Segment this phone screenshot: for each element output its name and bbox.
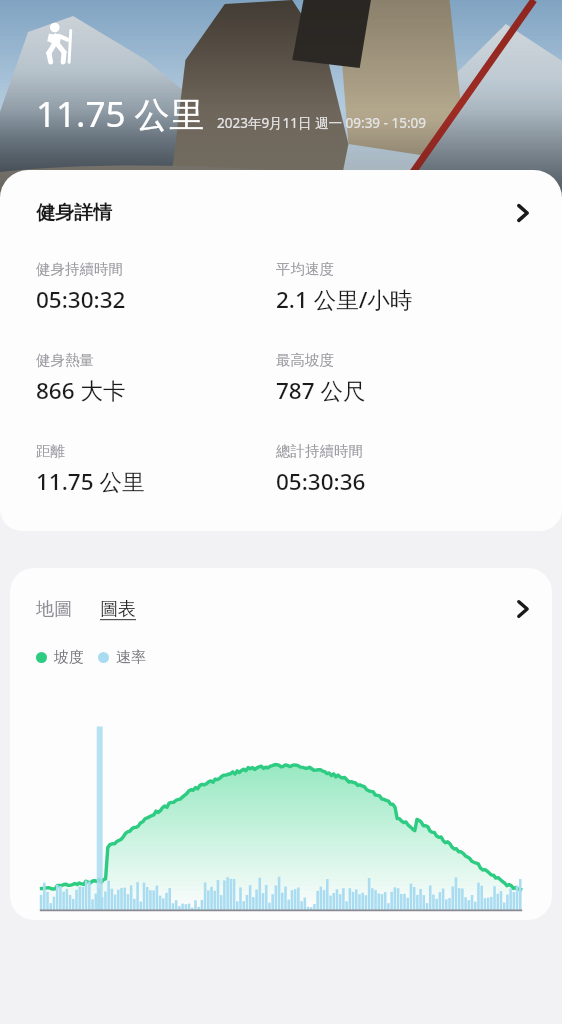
staticText: 健身詳情 — [36, 201, 112, 225]
staticText: 總計持續時間 — [276, 442, 363, 460]
staticText: 2023年9月11日 週一 09:39 - 15:09 — [217, 114, 426, 132]
staticText: 圖表 — [100, 598, 136, 621]
staticText: 平均速度 — [276, 260, 334, 278]
button[interactable]: 健身詳情 — [36, 200, 536, 226]
staticText: 坡度 — [54, 648, 84, 667]
other: 健身詳情 — [510, 200, 536, 226]
staticText: 速率 — [116, 648, 146, 667]
staticText: 最高坡度 — [276, 351, 334, 369]
staticText: 866 大卡 — [36, 375, 126, 406]
staticText: 05:30:32 — [36, 284, 126, 315]
staticText: 2.1 公里/小時 — [276, 284, 413, 315]
button[interactable]: Hiking activity — [38, 22, 80, 64]
button[interactable]: 圖表 — [100, 598, 136, 621]
staticText: 11.75 公里 — [36, 90, 205, 138]
button[interactable]: 地圖 — [36, 598, 76, 621]
staticText: 787 公尺 — [276, 375, 366, 406]
button[interactable]: 圖表詳情 — [510, 596, 536, 622]
staticText: 健身熱量 — [36, 351, 94, 369]
staticText: 05:30:36 — [276, 466, 366, 497]
staticText: 健身持續時間 — [36, 260, 123, 278]
staticText: 距離 — [36, 442, 65, 460]
staticText: 地圖 — [36, 598, 72, 621]
staticText: 11.75 公里 — [36, 466, 145, 497]
